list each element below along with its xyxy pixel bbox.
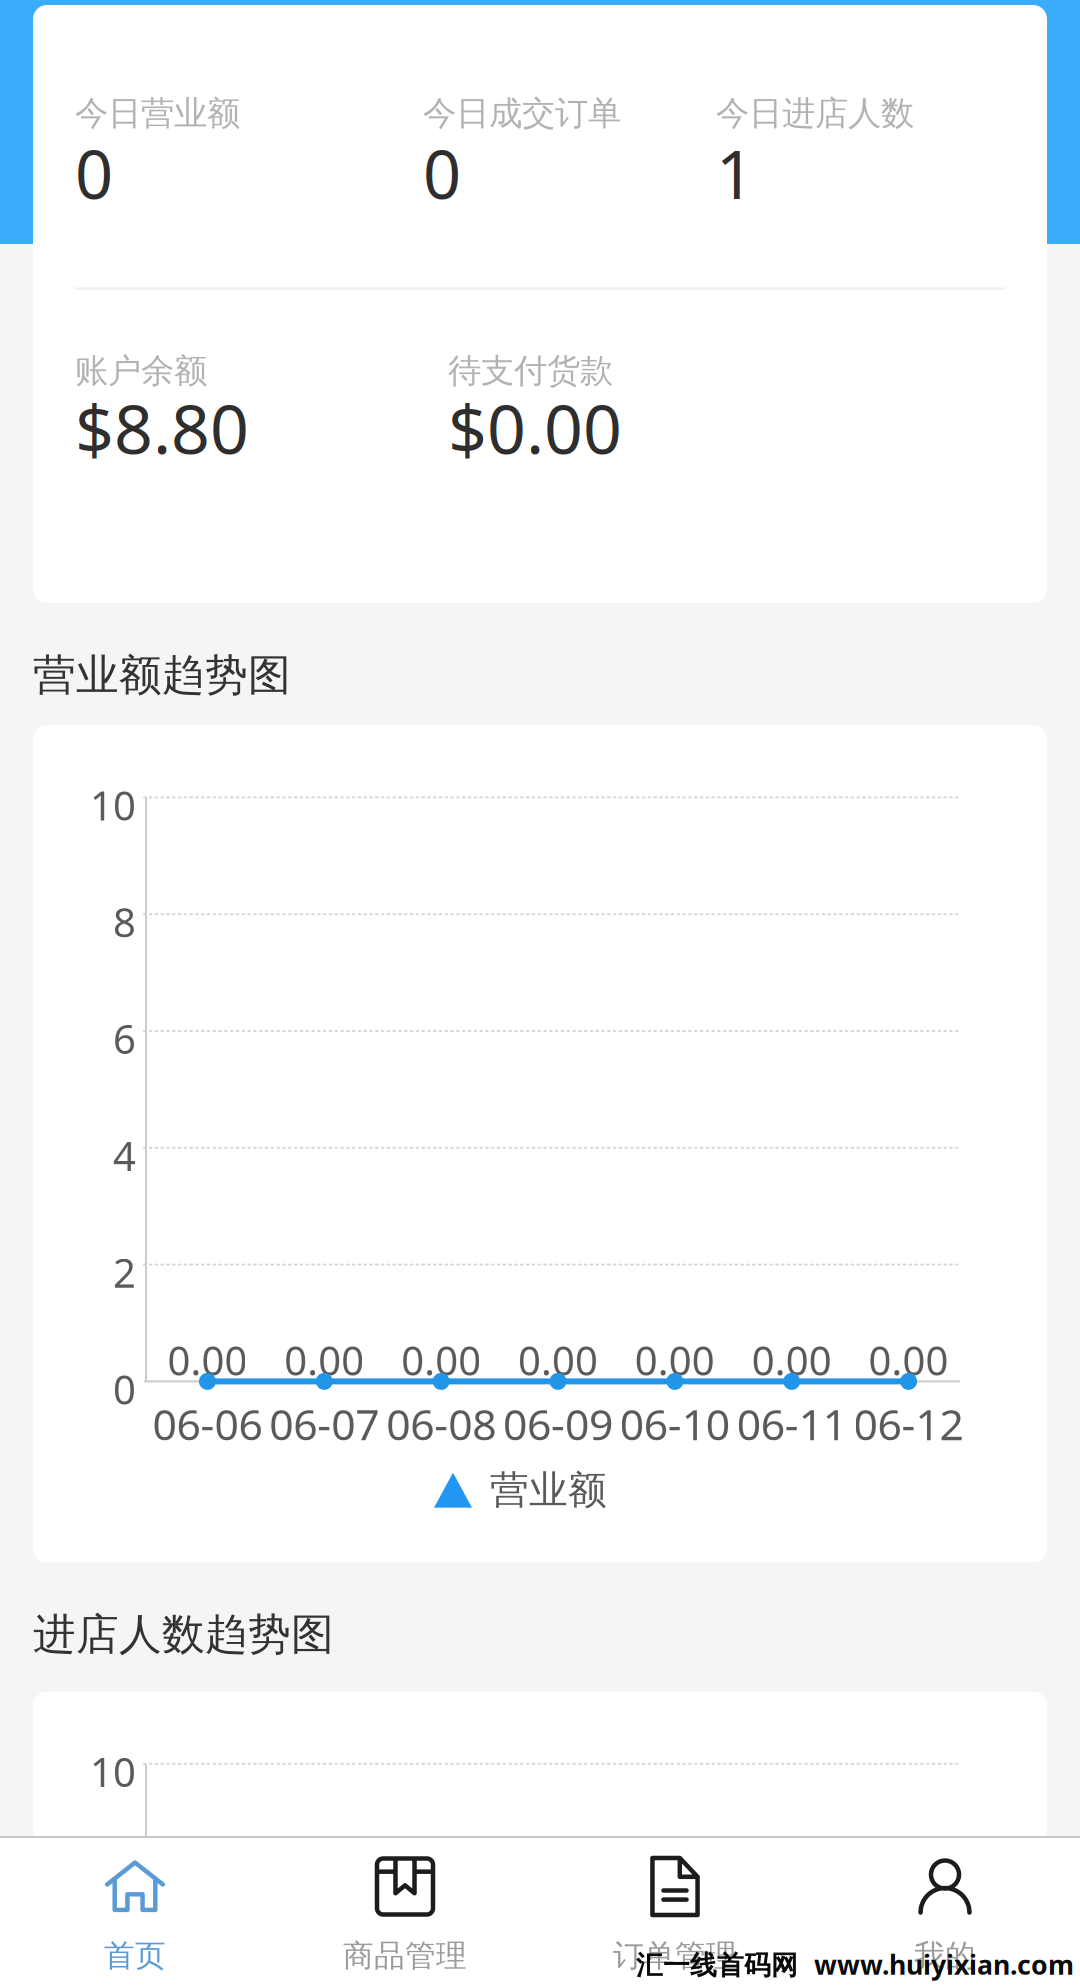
staticText: 6 xyxy=(113,1012,136,1065)
staticText: 0.00 xyxy=(869,1333,949,1386)
staticText: 10 xyxy=(90,778,136,831)
staticText: $0.00 xyxy=(448,382,622,473)
staticText: 0 xyxy=(75,129,113,217)
staticText: 订单管理 xyxy=(613,1937,737,1975)
staticText: 8 xyxy=(113,1862,136,1915)
staticText: 进店人数趋势图 xyxy=(33,1608,334,1661)
staticText: 今日营业额 xyxy=(75,93,240,134)
staticText: 8 xyxy=(113,895,136,948)
staticText: 商品管理 xyxy=(343,1937,467,1975)
staticText: 06-08 xyxy=(386,1395,496,1452)
button[interactable]: 订单管理 xyxy=(540,1838,810,1987)
staticText: 0 xyxy=(423,129,461,217)
staticText: 06-11 xyxy=(737,1395,847,1452)
staticText: 待支付货款 xyxy=(448,350,613,391)
staticText: 今日进店人数 xyxy=(716,93,914,134)
staticText: 我的 xyxy=(914,1937,976,1975)
staticText: 汇一线首码网 www.huiyixian.com xyxy=(636,1947,1074,1982)
staticText: 0.00 xyxy=(752,1333,832,1386)
button[interactable]: 首页 xyxy=(0,1838,270,1987)
staticText: 首页 xyxy=(104,1937,166,1975)
staticText: 营业额趋势图 xyxy=(33,649,291,701)
staticText: 0 xyxy=(113,1362,136,1415)
staticText: 营业额 xyxy=(490,1466,607,1514)
staticText: 4 xyxy=(113,1129,136,1182)
staticText: 06-07 xyxy=(269,1395,379,1452)
staticText: 0.00 xyxy=(635,1333,715,1386)
staticText: 06-12 xyxy=(854,1395,964,1452)
staticText: 账户余额 xyxy=(75,350,207,391)
staticText: 0.00 xyxy=(167,1333,247,1386)
staticText: 2 xyxy=(113,1246,136,1299)
button[interactable]: 我的 xyxy=(810,1838,1080,1987)
staticText: 0.00 xyxy=(284,1333,364,1386)
staticText: 0.00 xyxy=(518,1333,598,1386)
staticText: 06-06 xyxy=(152,1395,262,1452)
staticText: $8.80 xyxy=(75,382,249,473)
staticText: 1 xyxy=(716,129,754,217)
staticText: 10 xyxy=(90,1745,136,1798)
staticText: 06-10 xyxy=(620,1395,730,1452)
staticText: 06-09 xyxy=(503,1395,613,1452)
staticText: 今日成交订单 xyxy=(423,93,621,134)
button[interactable]: 商品管理 xyxy=(270,1838,540,1987)
staticText: 0.00 xyxy=(401,1333,481,1386)
